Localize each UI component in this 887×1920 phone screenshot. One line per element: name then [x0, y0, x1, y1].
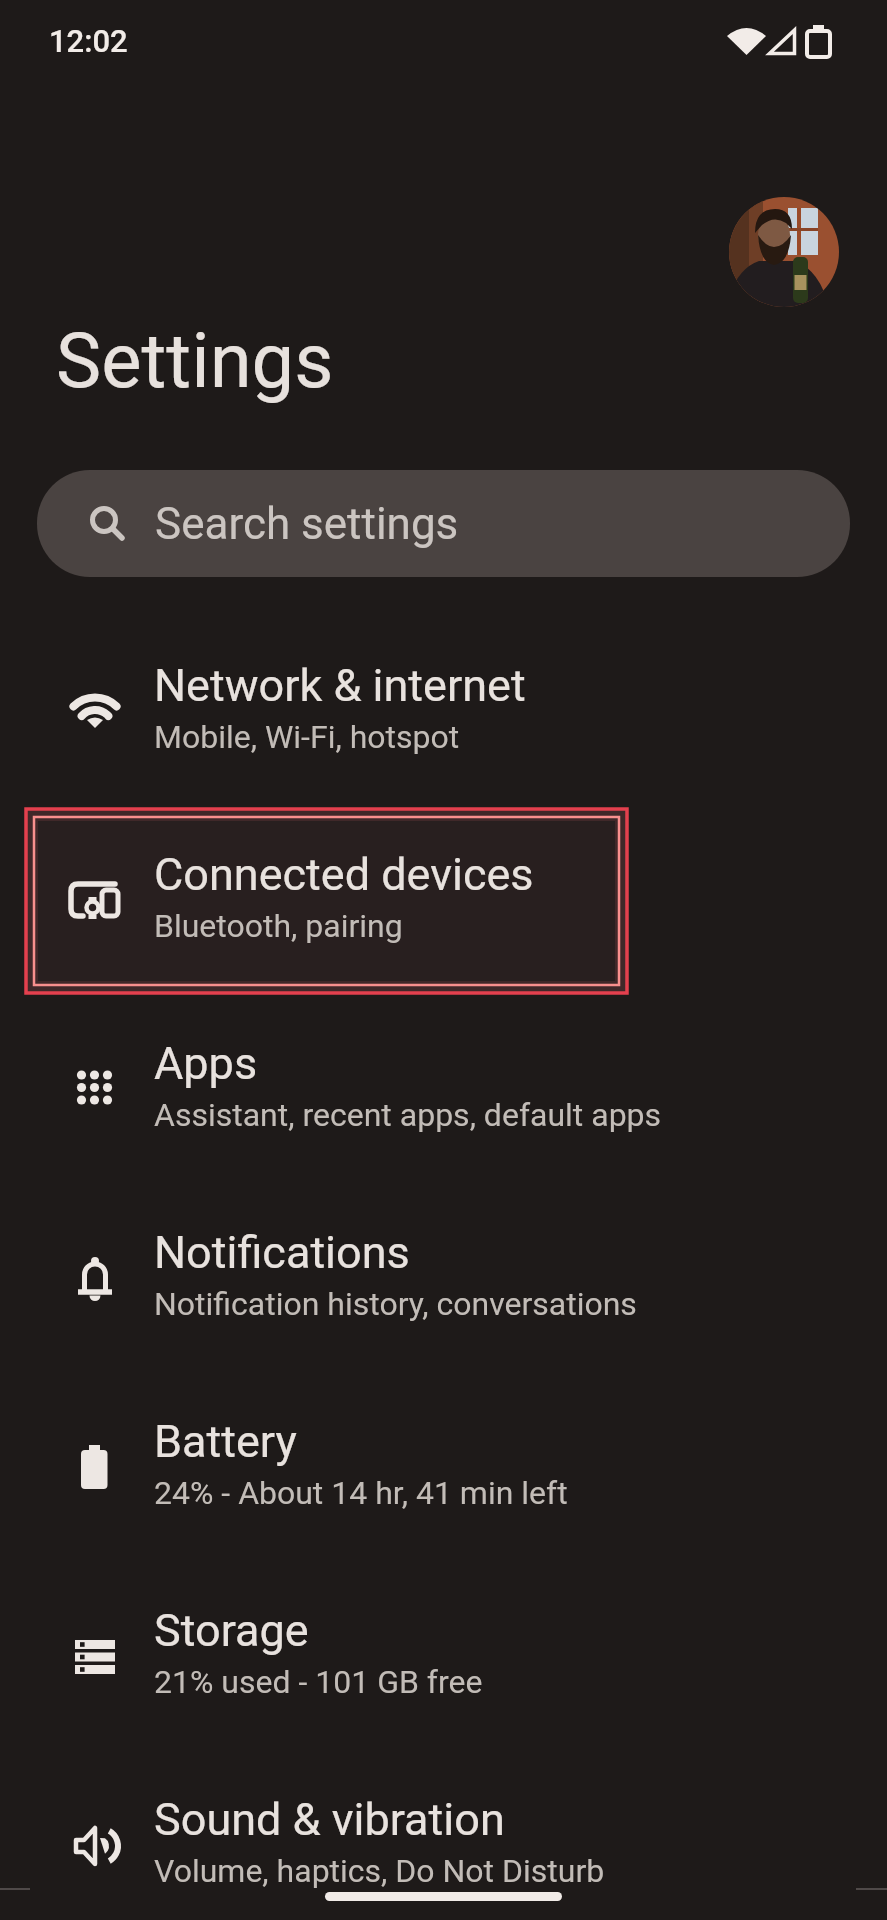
staticText: Storage	[154, 1604, 309, 1657]
button[interactable]: Search settings	[37, 470, 850, 577]
staticText: Assistant, recent apps, default apps	[154, 1096, 662, 1134]
button[interactable]	[0, 1393, 887, 1545]
button[interactable]	[0, 826, 887, 978]
staticText: 12:02	[49, 23, 128, 59]
staticText: Search settings	[155, 498, 459, 550]
button[interactable]	[0, 1582, 887, 1734]
button[interactable]	[0, 637, 887, 789]
staticText: 24% - About 14 hr, 41 min left	[154, 1474, 568, 1512]
staticText: 21% used - 101 GB free	[154, 1663, 483, 1701]
staticText: Settings	[56, 316, 334, 405]
button[interactable]	[729, 197, 839, 307]
staticText: Notification history, conversations	[154, 1285, 637, 1323]
staticText: Notifications	[154, 1226, 410, 1279]
staticText: Network & internet	[154, 659, 526, 712]
button[interactable]	[0, 1771, 887, 1920]
button[interactable]	[0, 1204, 887, 1356]
staticText: Sound & vibration	[154, 1793, 505, 1846]
staticText: Connected devices	[154, 848, 534, 901]
staticText: Bluetooth, pairing	[154, 907, 403, 945]
staticText: Battery	[154, 1415, 297, 1468]
button[interactable]	[0, 1015, 887, 1167]
staticText: Apps	[154, 1037, 258, 1090]
staticText: Volume, haptics, Do Not Disturb	[154, 1852, 605, 1890]
staticText: Mobile, Wi-Fi, hotspot	[154, 718, 460, 756]
